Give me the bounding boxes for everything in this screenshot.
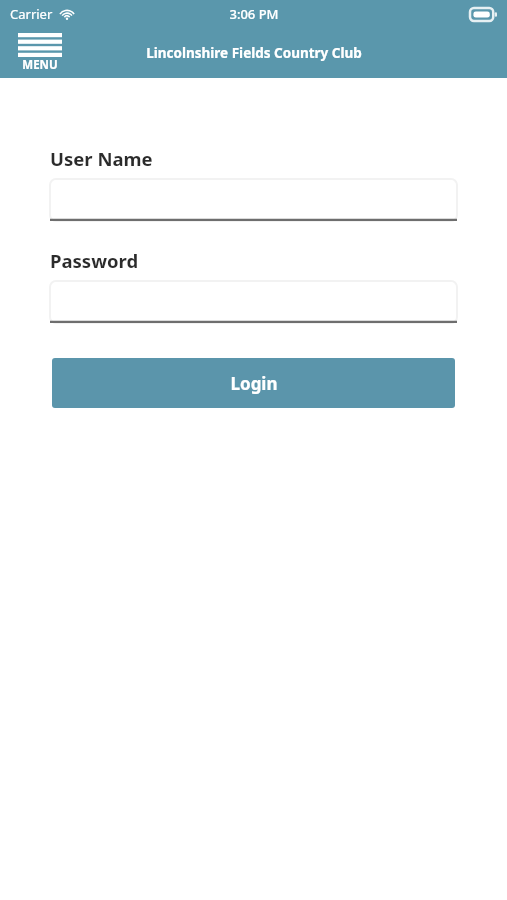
- staticText: Lincolnshire Fields Country Club: [146, 44, 362, 62]
- button[interactable]: [50, 179, 457, 221]
- staticText: Carrier: [10, 5, 53, 23]
- staticText: 3:06 PM: [229, 5, 279, 23]
- button[interactable]: Login: [52, 358, 455, 408]
- button[interactable]: Menu: [14, 28, 66, 78]
- staticText: MENU: [22, 57, 58, 73]
- staticText: Password: [50, 248, 139, 273]
- button[interactable]: [50, 281, 457, 323]
- staticText: Login: [230, 372, 278, 395]
- staticText: User Name: [50, 146, 153, 171]
